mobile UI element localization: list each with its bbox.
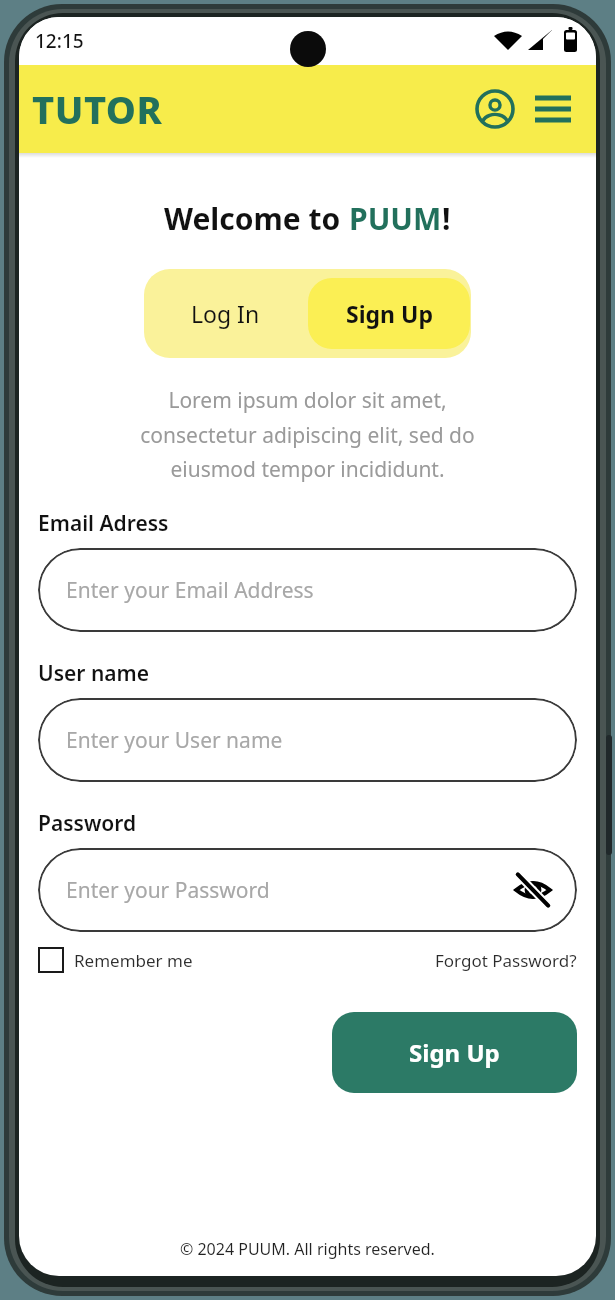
button[interactable]: Enter your Email Address <box>38 548 577 632</box>
staticText: ! <box>442 198 451 239</box>
staticText: Lorem ipsum dolor sit amet, consectetur … <box>140 386 475 483</box>
staticText: Email Adress <box>38 509 169 538</box>
staticText: Forgot Password? <box>435 949 577 972</box>
staticText: Enter your Email Address <box>66 576 314 605</box>
staticText: TUTOR <box>32 83 163 135</box>
button[interactable]: Sign Up <box>332 1012 577 1093</box>
staticText: Log In <box>191 298 260 329</box>
button[interactable]: Remember me <box>38 947 193 973</box>
button[interactable]: Forgot Password? <box>435 949 577 972</box>
staticText: 12:15 <box>35 28 84 54</box>
button[interactable]: Account <box>472 86 518 132</box>
staticText: Enter your Password <box>66 876 270 905</box>
button[interactable]: Log In <box>144 269 307 358</box>
button[interactable]: Menu <box>530 86 576 132</box>
button[interactable]: Enter your Password <box>38 848 577 932</box>
button[interactable]: Toggle password visibility <box>511 868 555 912</box>
staticText: User name <box>38 659 150 688</box>
staticText: Remember me <box>74 949 193 972</box>
staticText: Sign Up <box>409 1036 500 1069</box>
button[interactable]: Sign Up <box>308 278 470 349</box>
staticText: Sign Up <box>346 298 433 329</box>
staticText: © 2024 PUUM. All rights reserved. <box>180 1238 435 1260</box>
staticText: Enter your User name <box>66 726 283 755</box>
staticText: Welcome to <box>164 198 349 239</box>
staticText: PUUM <box>349 198 442 239</box>
staticText: Password <box>38 809 137 838</box>
button[interactable]: Enter your User name <box>38 698 577 782</box>
